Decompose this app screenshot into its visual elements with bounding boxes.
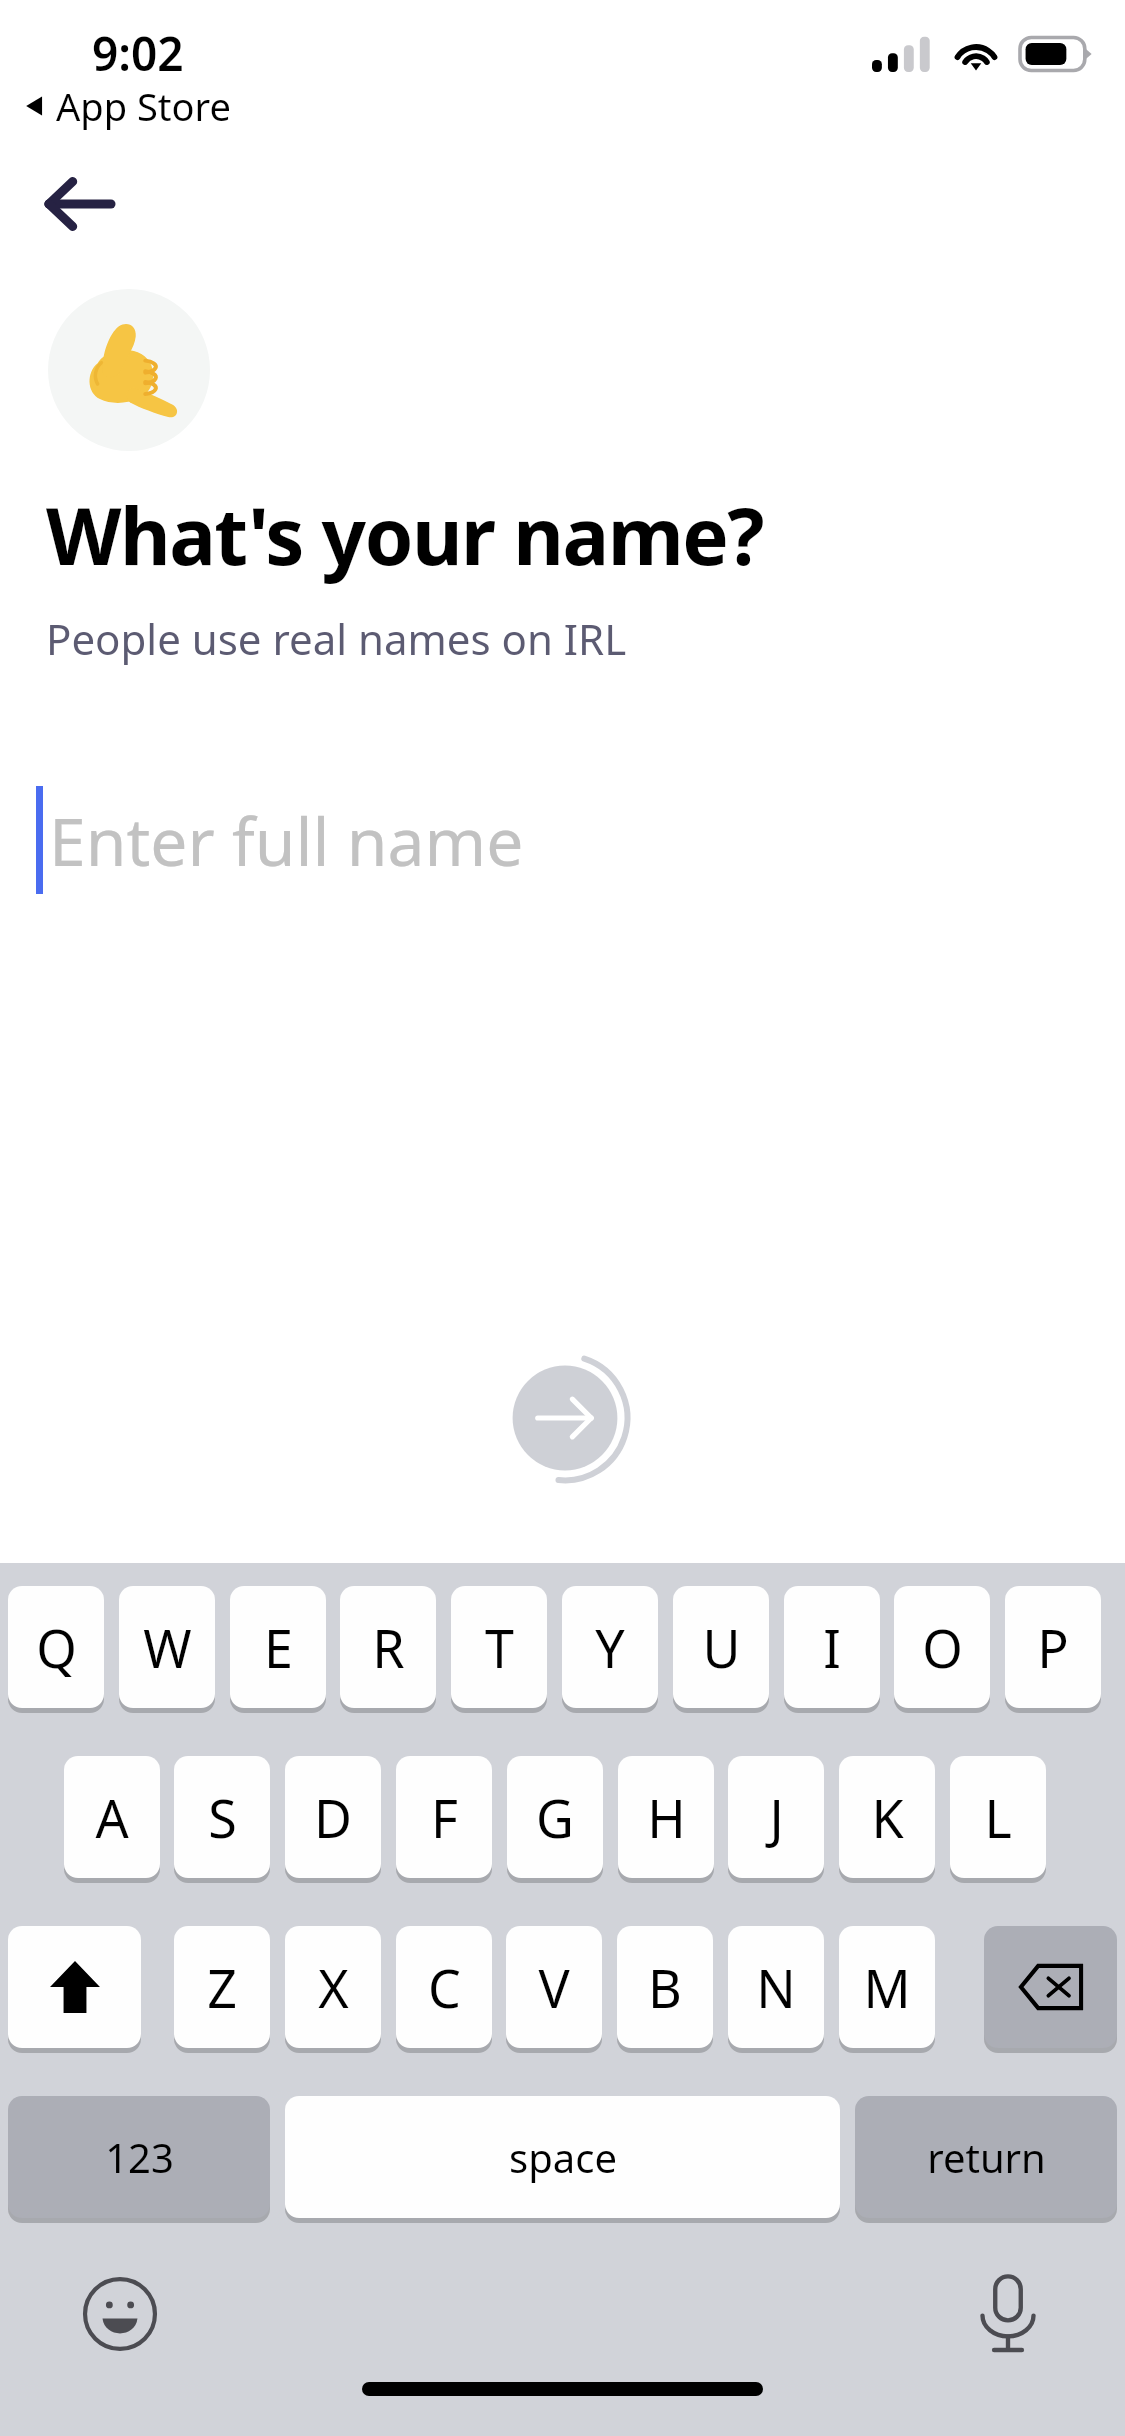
button[interactable]: Y (562, 1586, 658, 1708)
staticText: What's your name? (46, 482, 763, 588)
button[interactable]: O (894, 1586, 990, 1708)
button[interactable]: W (119, 1586, 215, 1708)
staticText: U (702, 1612, 741, 1683)
staticText: C (428, 1952, 461, 2023)
staticText: E (264, 1612, 293, 1683)
button[interactable]: S (174, 1756, 270, 1878)
staticText: F (431, 1782, 458, 1853)
staticText: Z (207, 1952, 237, 2023)
staticText: 9:02 (92, 22, 184, 85)
staticText: H (647, 1782, 686, 1853)
button[interactable]: A (64, 1756, 160, 1878)
button[interactable]: F (396, 1756, 492, 1878)
staticText: D (314, 1782, 352, 1853)
button[interactable]: Dictation (960, 2266, 1056, 2362)
button[interactable]: Backspace (984, 1926, 1117, 2048)
button[interactable]: I (784, 1586, 880, 1708)
staticText: K (871, 1782, 904, 1853)
button[interactable]: V (506, 1926, 602, 2048)
staticText: V (538, 1952, 570, 2023)
staticText: space (509, 2130, 617, 2184)
button[interactable]: Profile emoji (48, 289, 210, 451)
staticText: N (756, 1952, 796, 2023)
staticText: I (823, 1612, 841, 1683)
staticText: W (143, 1612, 192, 1683)
staticText: G (536, 1782, 574, 1853)
staticText: B (648, 1952, 682, 2023)
staticText: P (1037, 1612, 1069, 1683)
button[interactable]: U (673, 1586, 769, 1708)
button[interactable]: T (451, 1586, 547, 1708)
button[interactable]: Q (8, 1586, 104, 1708)
button[interactable]: E (230, 1586, 326, 1708)
button[interactable]: B (617, 1926, 713, 2048)
staticText: O (922, 1612, 963, 1683)
staticText: A (95, 1782, 129, 1853)
button[interactable]: D (285, 1756, 381, 1878)
button[interactable]: K (839, 1756, 935, 1878)
staticText: Enter full name (49, 795, 524, 885)
button[interactable]: Emoji keyboard (72, 2266, 168, 2362)
button[interactable]: App Store (24, 80, 231, 132)
staticText: X (318, 1952, 349, 2023)
staticText: People use real names on IRL (46, 610, 627, 667)
button[interactable]: R (340, 1586, 436, 1708)
button[interactable]: P (1005, 1586, 1101, 1708)
button[interactable]: N (728, 1926, 824, 2048)
button[interactable]: M (839, 1926, 935, 2048)
staticText: Q (36, 1612, 77, 1683)
button[interactable]: J (728, 1756, 824, 1878)
button[interactable]: Z (174, 1926, 270, 2048)
staticText: S (208, 1782, 237, 1853)
staticText: M (863, 1952, 911, 2023)
staticText: R (372, 1612, 405, 1683)
button[interactable]: space (285, 2096, 840, 2218)
staticText: J (769, 1782, 784, 1853)
staticText: App Store (56, 80, 231, 132)
staticText: return (927, 2130, 1046, 2184)
staticText: Y (595, 1612, 625, 1683)
staticText: T (485, 1612, 514, 1683)
button[interactable]: 123 (8, 2096, 270, 2218)
button[interactable]: Continue (465, 1318, 665, 1518)
button[interactable]: H (618, 1756, 714, 1878)
staticText: L (984, 1782, 1012, 1853)
staticText: 123 (105, 2130, 174, 2184)
button[interactable]: return (855, 2096, 1117, 2218)
button[interactable]: Enter full name (36, 760, 1089, 920)
button[interactable]: L (950, 1756, 1046, 1878)
button[interactable]: C (396, 1926, 492, 2048)
button[interactable]: X (285, 1926, 381, 2048)
button[interactable]: G (507, 1756, 603, 1878)
button[interactable]: Shift (8, 1926, 141, 2048)
button[interactable]: Back (24, 150, 132, 258)
